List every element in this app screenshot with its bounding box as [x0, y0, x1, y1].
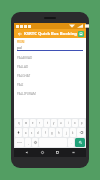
- button[interactable]: j: [63, 128, 69, 137]
- staticText: f: [45, 131, 46, 135]
- button[interactable]: PALLIPURAM: [14, 89, 86, 98]
- button[interactable]: PALAKKAD: [14, 53, 86, 62]
- staticText: pal: [17, 45, 22, 50]
- button[interactable]: a: [23, 128, 28, 137]
- staticText: PALLIPURAM: [17, 92, 36, 96]
- staticText: w: [25, 121, 28, 125]
- button[interactable]: ,: [25, 138, 31, 147]
- staticText: ,: [28, 141, 29, 145]
- button[interactable]: i: [65, 119, 71, 127]
- staticText: p: [81, 121, 83, 125]
- button[interactable]: ?123: [15, 138, 24, 147]
- button[interactable]: Home: [39, 149, 46, 156]
- button[interactable]: r: [37, 119, 43, 127]
- button[interactable]: d: [35, 128, 41, 137]
- staticText: k: [72, 131, 74, 135]
- staticText: d: [37, 131, 39, 135]
- button[interactable]: PALGHAT: [14, 71, 86, 80]
- button[interactable]: q: [15, 119, 22, 127]
- staticText: g: [51, 131, 53, 135]
- button[interactable]: k: [70, 128, 76, 137]
- staticText: h: [58, 131, 60, 135]
- button[interactable]: t: [44, 119, 50, 127]
- staticText: y: [53, 121, 55, 125]
- button[interactable]: y: [51, 119, 57, 127]
- button[interactable]: h: [56, 128, 62, 137]
- button[interactable]: Shift: [15, 128, 22, 137]
- staticText: s: [31, 131, 33, 135]
- button[interactable]: Switch keyboard: [70, 149, 77, 156]
- staticText: .: [71, 141, 72, 145]
- staticText: e: [32, 121, 34, 125]
- button[interactable]: f: [42, 128, 48, 137]
- button[interactable]: o: [72, 119, 78, 127]
- button[interactable]: PALLAD: [14, 62, 86, 71]
- button[interactable]: pal: [17, 45, 83, 50]
- staticText: PALGHAT: [17, 74, 31, 78]
- staticText: r: [39, 121, 41, 125]
- button[interactable]: Backspace: [77, 128, 85, 137]
- staticText: PALI: [17, 83, 24, 87]
- button[interactable]: Recents: [54, 149, 61, 156]
- staticText: u: [60, 121, 62, 125]
- staticText: t: [47, 121, 48, 125]
- button[interactable]: PALI: [14, 80, 86, 89]
- staticText: i: [68, 121, 69, 125]
- staticText: KSRTC Quick Bus Booking: [24, 31, 78, 37]
- staticText: a: [25, 131, 27, 135]
- button[interactable]: g: [49, 128, 55, 137]
- staticText: o: [74, 121, 76, 125]
- staticText: PALLAD: [17, 65, 29, 69]
- staticText: ?123: [17, 141, 22, 144]
- button[interactable]: p: [79, 119, 85, 127]
- staticText: PALAKKAD: [17, 56, 33, 60]
- button[interactable]: Bus: [78, 31, 84, 37]
- button[interactable]: Emoji: [32, 138, 38, 147]
- button[interactable]: w: [23, 119, 29, 127]
- staticText: q: [18, 121, 20, 125]
- button[interactable]: s: [29, 128, 34, 137]
- button[interactable]: e: [30, 119, 36, 127]
- button[interactable]: Back: [23, 149, 30, 156]
- button[interactable]: u: [58, 119, 64, 127]
- button[interactable]: Search: [75, 138, 85, 147]
- button[interactable]: Back: [16, 30, 23, 37]
- staticText: j: [66, 131, 67, 135]
- staticText: FROM: [17, 40, 25, 44]
